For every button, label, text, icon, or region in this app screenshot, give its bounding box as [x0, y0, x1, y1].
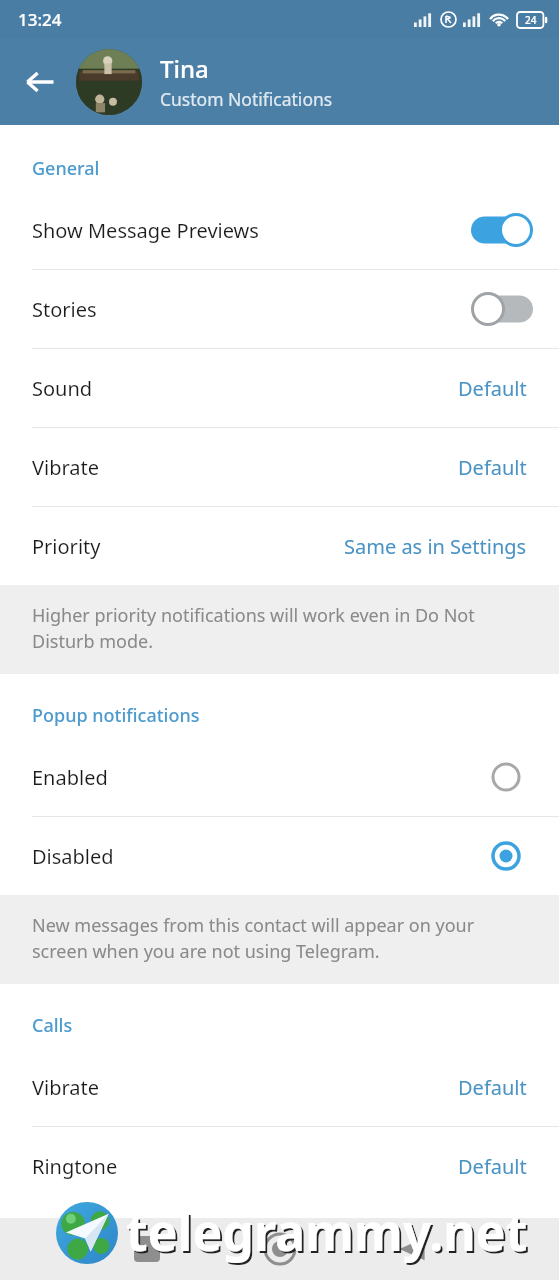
staticText: Stories	[32, 296, 471, 323]
staticText: Default	[458, 375, 527, 402]
staticText: 13:24	[18, 8, 62, 31]
button[interactable]: Priority	[0, 507, 559, 585]
button[interactable]: Back	[14, 56, 66, 108]
button[interactable]: Ringtone	[0, 1127, 559, 1205]
staticText: telegrammy.net	[126, 1198, 528, 1266]
staticText: Show Message Previews	[32, 217, 471, 244]
button[interactable]: Disabled	[0, 817, 559, 895]
staticText: General	[32, 156, 100, 181]
button[interactable]: Home	[251, 1220, 309, 1278]
staticText: Default	[458, 1074, 527, 1101]
staticText: Priority	[32, 533, 344, 560]
staticText: Ringtone	[32, 1153, 458, 1180]
button[interactable]: Show Message Previews	[0, 191, 559, 269]
staticText: telegrammy.net	[128, 1200, 530, 1268]
button[interactable]: Sound	[0, 349, 559, 427]
staticText: Vibrate	[32, 1074, 458, 1101]
staticText: Default	[458, 1153, 527, 1180]
staticText: Disabled	[32, 843, 491, 870]
button[interactable]: Recent apps	[118, 1220, 176, 1278]
staticText: Vibrate	[32, 454, 458, 481]
staticText: Enabled	[32, 764, 491, 791]
staticText: Same as in Settings	[344, 533, 527, 560]
staticText: Calls	[32, 1013, 73, 1038]
button[interactable]: Vibrate	[0, 428, 559, 506]
staticText: New messages from this contact will appe…	[32, 913, 529, 964]
button[interactable]: Stories	[0, 270, 559, 348]
staticText: Higher priority notifications will work …	[32, 603, 529, 654]
button[interactable]: Vibrate	[0, 1048, 559, 1126]
button[interactable]: Profile photo	[76, 49, 142, 115]
staticText: Default	[458, 454, 527, 481]
staticText: Popup notifications	[32, 703, 200, 728]
staticText: Tina	[160, 52, 209, 85]
button[interactable]: Enabled	[0, 738, 559, 816]
staticText: Sound	[32, 375, 458, 402]
button[interactable]: Back	[383, 1220, 441, 1278]
staticText: Custom Notifications	[160, 87, 333, 111]
staticText: 24	[525, 13, 537, 27]
